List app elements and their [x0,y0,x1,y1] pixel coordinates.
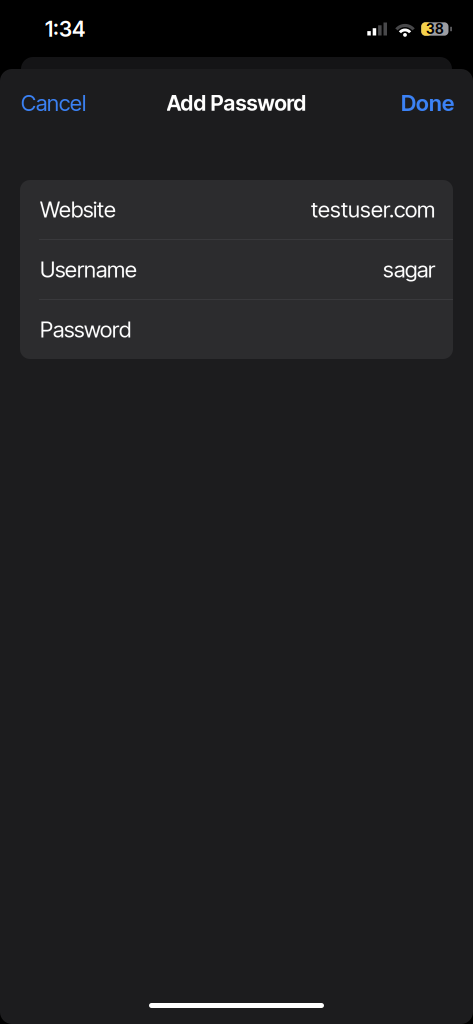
staticText: Done [401,90,454,116]
staticText: Username [40,256,137,283]
staticText: Add Password [166,90,306,116]
button[interactable]: Password [20,300,453,359]
button[interactable]: Done [401,82,454,124]
button[interactable]: Website [20,180,453,240]
staticText: testuser.com [311,196,435,223]
button[interactable]: Username [20,240,453,300]
staticText: Cancel [21,90,86,116]
button[interactable]: Cancel [21,82,86,124]
staticText: Website [40,196,116,223]
staticText: Password [40,316,131,343]
staticText: sagar [383,256,435,283]
staticText: 38 [426,21,444,37]
staticText: 1:34 [45,16,85,42]
